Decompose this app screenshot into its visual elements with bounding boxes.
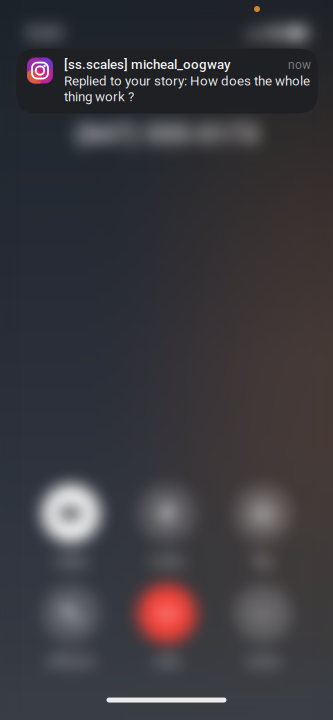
button[interactable]: [ss.scales] micheal_oogway xyxy=(16,49,318,113)
button[interactable]: effects xyxy=(28,584,114,670)
staticText: end xyxy=(155,652,179,670)
staticText: Replied to your story: How does the whol… xyxy=(64,73,310,104)
staticText: flip xyxy=(253,552,273,570)
button[interactable]: video xyxy=(28,484,114,570)
staticText: mute xyxy=(150,552,184,570)
button[interactable]: more xyxy=(220,584,306,670)
staticText: [ss.scales] micheal_oogway xyxy=(64,57,231,72)
staticText: effects xyxy=(47,652,94,670)
button[interactable]: end xyxy=(124,584,210,670)
staticText: video xyxy=(53,552,88,570)
staticText: (847) 555-0173 xyxy=(74,118,258,149)
staticText: now xyxy=(288,58,311,72)
staticText: more xyxy=(246,652,280,670)
button[interactable]: flip xyxy=(220,484,306,570)
button[interactable]: mute xyxy=(124,484,210,570)
staticText: 9:41 xyxy=(27,22,65,44)
